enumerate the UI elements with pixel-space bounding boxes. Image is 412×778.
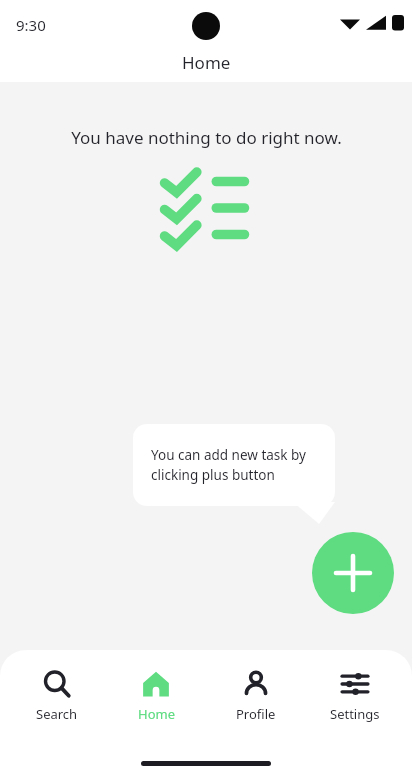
button[interactable]: Home xyxy=(113,666,199,727)
staticText: 9:30 xyxy=(16,15,46,35)
staticText: Home xyxy=(138,705,175,723)
button[interactable]: Search xyxy=(14,666,100,727)
button[interactable]: Settings xyxy=(312,666,398,727)
button[interactable]: You can add new task by clicking plus bu… xyxy=(133,424,335,506)
button[interactable]: Add new task xyxy=(312,532,394,614)
staticText: Settings xyxy=(330,705,380,723)
button[interactable]: Profile xyxy=(213,666,299,727)
staticText: Search xyxy=(36,705,78,723)
staticText: Home xyxy=(182,51,231,74)
staticText: You have nothing to do right now. xyxy=(71,126,342,149)
staticText: You can add new task by clicking plus bu… xyxy=(151,446,317,484)
staticText: Profile xyxy=(236,705,276,723)
